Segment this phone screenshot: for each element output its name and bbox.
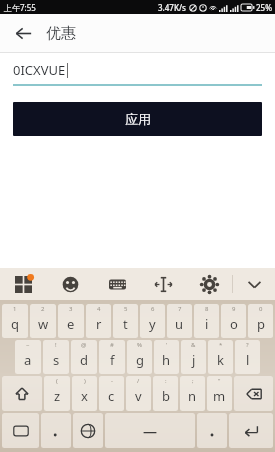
button[interactable]: Apps	[0, 268, 47, 300]
staticText: j	[192, 351, 196, 369]
staticText: y	[149, 315, 156, 333]
staticText: q	[11, 315, 19, 333]
button[interactable]: 5	[113, 304, 138, 338]
staticText: r	[96, 315, 102, 333]
button[interactable]: Settings	[186, 268, 232, 300]
staticText: i	[205, 315, 209, 333]
staticText: g	[136, 351, 144, 369]
button[interactable]: Space	[105, 413, 195, 448]
staticText: 0ICXVUE	[13, 61, 66, 79]
staticText: l	[246, 351, 250, 369]
button[interactable]: :	[153, 376, 178, 411]
staticText: "	[218, 377, 221, 385]
staticText: #	[110, 341, 114, 349]
staticText: )	[84, 377, 86, 385]
staticText: n	[188, 387, 197, 405]
button[interactable]: %	[127, 340, 152, 374]
staticText: v	[135, 387, 142, 405]
button[interactable]: 6	[140, 304, 165, 338]
button[interactable]: 7	[167, 304, 192, 338]
button[interactable]: 2	[30, 304, 56, 338]
staticText: 8	[205, 305, 209, 313]
staticText: u	[175, 315, 184, 333]
button[interactable]: Keyboard	[94, 268, 140, 300]
staticText: 应用	[125, 111, 151, 127]
button[interactable]: Backspace	[234, 376, 273, 411]
staticText: '	[166, 341, 168, 349]
staticText: m	[213, 387, 226, 405]
staticText: :	[165, 377, 167, 385]
staticText: 上午7:55	[4, 2, 36, 13]
button[interactable]: -	[99, 376, 124, 411]
button[interactable]: Period	[197, 413, 227, 448]
staticText: p	[257, 315, 265, 333]
staticText: z	[54, 387, 61, 405]
button[interactable]: Emoji	[47, 268, 94, 300]
staticText: 5	[124, 305, 128, 313]
button[interactable]: 0	[248, 304, 273, 338]
button[interactable]: Move cursor	[140, 268, 186, 300]
staticText: f	[110, 351, 115, 369]
staticText: c	[108, 387, 115, 405]
staticText: -	[111, 377, 113, 385]
staticText: k	[217, 351, 224, 369]
button[interactable]: ?	[235, 340, 260, 374]
button[interactable]: 3	[58, 304, 84, 338]
staticText: o	[230, 315, 238, 333]
button[interactable]: !	[43, 340, 69, 374]
button[interactable]: 应用	[13, 102, 262, 136]
button[interactable]: Language	[73, 413, 103, 448]
button[interactable]: 4	[86, 304, 111, 338]
staticText: x	[81, 387, 88, 405]
staticText: t	[123, 315, 128, 333]
staticText: ?	[246, 341, 249, 349]
staticText: 25%	[256, 2, 272, 13]
staticText: &	[191, 341, 196, 349]
staticText: 3.47K/s	[158, 2, 186, 13]
staticText: ;	[192, 377, 194, 385]
staticText: *	[219, 341, 223, 349]
staticText: e	[67, 315, 75, 333]
staticText: w	[38, 315, 49, 333]
staticText: 9	[232, 305, 236, 313]
staticText: 1	[13, 305, 17, 313]
button[interactable]: @	[71, 340, 97, 374]
staticText: d	[80, 351, 88, 369]
staticText: b	[162, 387, 170, 405]
staticText: 3	[69, 305, 73, 313]
button[interactable]: /	[126, 376, 151, 411]
staticText: s	[53, 351, 60, 369]
staticText: h	[162, 351, 171, 369]
button[interactable]: Back	[8, 18, 38, 48]
button[interactable]: ;	[180, 376, 205, 411]
button[interactable]: 0ICXVUE	[13, 61, 262, 86]
staticText: 7	[178, 305, 182, 313]
staticText: @	[81, 341, 87, 349]
button[interactable]: (	[44, 376, 70, 411]
staticText: (	[56, 377, 58, 385]
staticText: 6	[151, 305, 155, 313]
button[interactable]: Hide keyboard	[233, 268, 275, 300]
button[interactable]: &	[181, 340, 206, 374]
staticText: %	[137, 341, 142, 349]
button[interactable]: Shift	[2, 376, 42, 411]
staticText: 4	[97, 305, 101, 313]
staticText: 优惠	[46, 24, 76, 43]
button[interactable]: #	[99, 340, 125, 374]
button[interactable]: "	[207, 376, 232, 411]
staticText: 0	[259, 305, 263, 313]
button[interactable]: Enter	[229, 413, 273, 448]
button[interactable]: Comma	[41, 413, 71, 448]
staticText: /	[137, 377, 140, 385]
button[interactable]: 9	[221, 304, 246, 338]
button[interactable]: )	[72, 376, 97, 411]
staticText: a	[24, 351, 32, 369]
button[interactable]: Symbols	[2, 413, 39, 448]
button[interactable]: '	[154, 340, 179, 374]
staticText: ~	[26, 341, 30, 349]
staticText: !	[55, 341, 57, 349]
button[interactable]: *	[208, 340, 233, 374]
button[interactable]: 8	[194, 304, 219, 338]
button[interactable]: 1	[2, 304, 28, 338]
button[interactable]: ~	[15, 340, 41, 374]
